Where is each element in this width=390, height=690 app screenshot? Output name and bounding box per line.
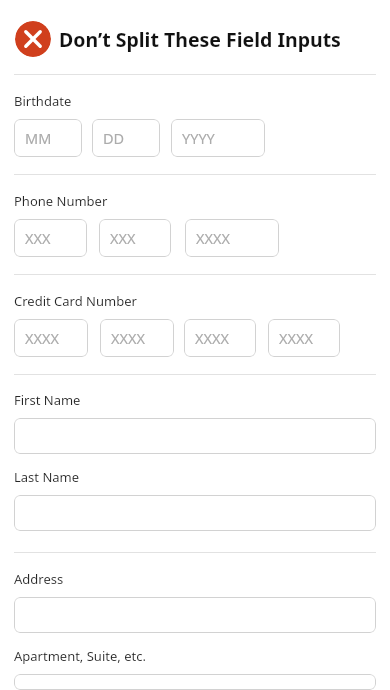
staticText: XXX xyxy=(25,228,51,248)
staticText: YYYY xyxy=(182,128,215,148)
button[interactable]: Card group 4 xyxy=(268,319,340,357)
button[interactable]: Last name xyxy=(14,495,376,531)
staticText: XXXX xyxy=(111,328,145,348)
button[interactable]: Card group 2 xyxy=(100,319,174,357)
button[interactable]: Address xyxy=(14,597,376,633)
button[interactable]: Birth day xyxy=(92,119,160,157)
button[interactable]: Birth year xyxy=(171,119,265,157)
staticText: Birthdate xyxy=(14,92,72,110)
button[interactable]: Area code xyxy=(14,219,87,257)
button[interactable]: Apartment, suite, etc. xyxy=(14,674,376,690)
button[interactable]: Card group 3 xyxy=(184,319,256,357)
button[interactable]: Phone line number xyxy=(185,219,279,257)
staticText: MM xyxy=(25,128,52,148)
staticText: XXXX xyxy=(25,328,59,348)
staticText: Apartment, Suite, etc. xyxy=(14,647,146,665)
button[interactable]: Phone prefix xyxy=(99,219,171,257)
staticText: XXXX xyxy=(196,228,230,248)
staticText: Phone Number xyxy=(14,192,108,210)
staticText: Credit Card Number xyxy=(14,292,137,310)
staticText: First Name xyxy=(14,391,81,409)
button[interactable]: Birth month xyxy=(14,119,82,157)
button[interactable]: Card group 1 xyxy=(14,319,88,357)
button[interactable]: Close xyxy=(15,21,51,57)
staticText: XXX xyxy=(110,228,136,248)
staticText: Last Name xyxy=(14,468,80,486)
staticText: DD xyxy=(103,128,125,148)
staticText: Address xyxy=(14,570,64,588)
staticText: XXXX xyxy=(279,328,313,348)
button[interactable]: First name xyxy=(14,418,376,454)
staticText: XXXX xyxy=(195,328,229,348)
staticText: Don’t Split These Field Inputs xyxy=(59,26,341,53)
